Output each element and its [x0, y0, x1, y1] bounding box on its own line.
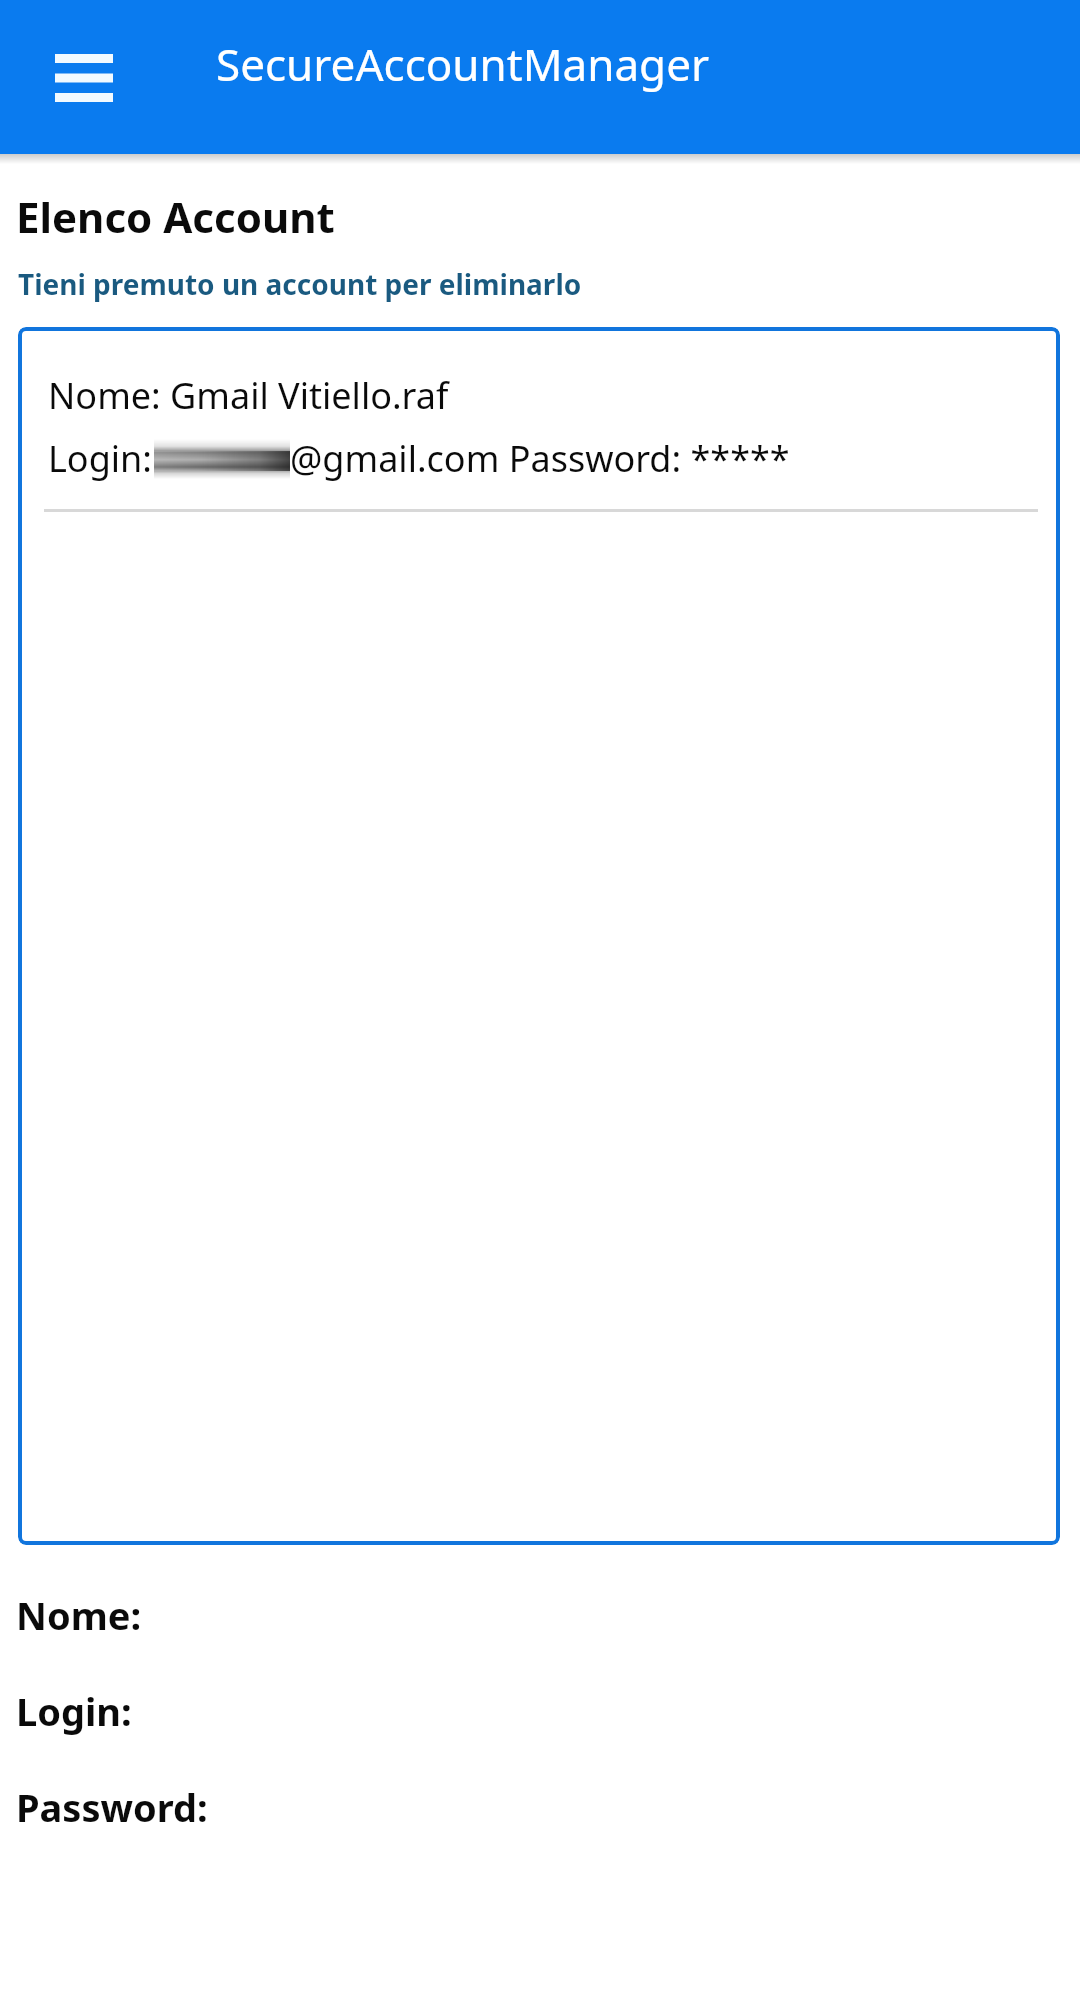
- button[interactable]: Open navigation menu: [28, 22, 140, 134]
- staticText: Nome: Gmail Vitiello.raf: [48, 371, 449, 420]
- staticText: SecureAccountManager: [216, 34, 710, 94]
- staticText: Login:: [48, 434, 152, 483]
- button[interactable]: Nome: Gmail Vitiello.raf: [18, 327, 1060, 509]
- staticText: Password:: [16, 1781, 208, 1833]
- staticText: Tieni premuto un account per eliminarlo: [18, 265, 582, 303]
- staticText: Login:: [16, 1685, 132, 1737]
- staticText: @gmail.com Password: *****: [290, 434, 790, 483]
- staticText: Nome:: [16, 1589, 142, 1641]
- staticText: Elenco Account: [16, 188, 335, 245]
